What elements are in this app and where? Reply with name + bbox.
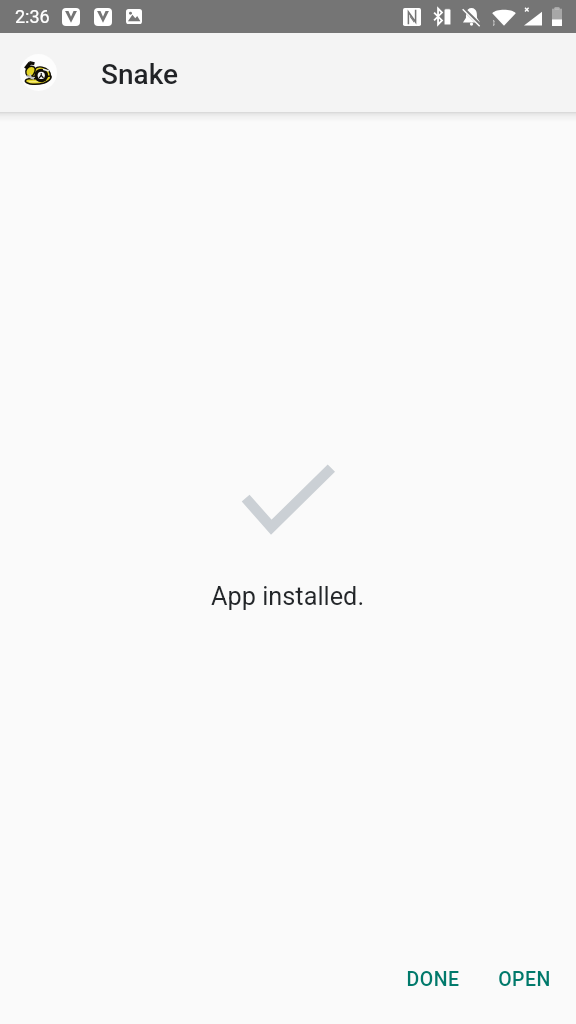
button[interactable]: DONE bbox=[397, 958, 469, 1001]
staticText: App installed. bbox=[211, 582, 365, 612]
staticText: Snake bbox=[101, 58, 178, 91]
button[interactable]: OPEN bbox=[489, 958, 560, 1001]
other: Snake app icon bbox=[20, 54, 57, 91]
staticText: 2:36 bbox=[15, 6, 50, 27]
staticText: OPEN bbox=[498, 968, 551, 991]
staticText: DONE bbox=[406, 968, 460, 991]
